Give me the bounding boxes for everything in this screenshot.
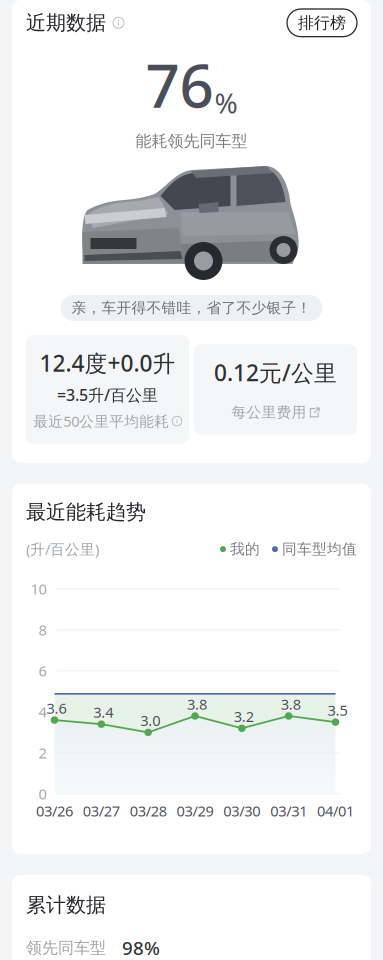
staticText: 12.4度+0.0升 [39, 348, 175, 378]
staticText: 每公里费用 [231, 403, 306, 421]
staticText: 98% [122, 935, 160, 960]
staticText: 03/28 [130, 801, 167, 821]
staticText: 04/01 [317, 801, 354, 821]
staticText: 3.4 [93, 702, 113, 722]
staticText: 10 [30, 579, 46, 599]
staticText: 能耗领先同车型 [135, 131, 247, 151]
staticText: =3.5升/百公里 [57, 384, 158, 405]
staticText: 领先同车型 [26, 938, 106, 958]
staticText: 0 [38, 784, 46, 804]
staticText: 0.12元/公里 [214, 357, 337, 387]
staticText: 4 [38, 702, 46, 722]
staticText: 8 [38, 620, 46, 640]
staticText: 最近能耗趋势 [26, 500, 146, 524]
staticText: 03/29 [176, 801, 213, 821]
staticText: 近期数据 [26, 10, 106, 35]
staticText: 我的 [230, 540, 260, 558]
staticText: 6 [38, 661, 46, 681]
staticText: 3.6 [46, 698, 66, 718]
staticText: 03/27 [83, 801, 120, 821]
staticText: 累计数据 [26, 893, 106, 917]
staticText: 最近50公里平均能耗 [33, 411, 169, 431]
staticText: 03/30 [223, 801, 260, 821]
staticText: 76 [145, 45, 213, 124]
staticText: 2 [38, 743, 46, 763]
staticText: 3.2 [234, 706, 254, 726]
staticText: 3.0 [140, 711, 160, 730]
staticText: 03/26 [36, 801, 73, 821]
staticText: 03/31 [270, 801, 307, 821]
staticText: % [214, 84, 237, 121]
staticText: 排行榜 [298, 13, 346, 33]
button[interactable]: 排行榜 [287, 9, 357, 37]
staticText: 3.5 [327, 700, 347, 720]
staticText: 3.8 [281, 694, 301, 714]
staticText: 亲，车开得不错哇，省了不少银子！ [71, 299, 311, 317]
staticText: (升/百公里) [26, 539, 99, 559]
staticText: 同车型均值 [282, 540, 357, 558]
staticText: 3.8 [187, 694, 207, 714]
